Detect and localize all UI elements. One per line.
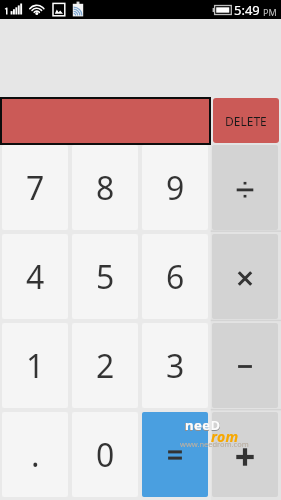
staticText: 8 bbox=[96, 166, 115, 210]
button[interactable]: 8 bbox=[72, 145, 138, 230]
staticText: 3 bbox=[166, 344, 185, 388]
button[interactable]: 4 bbox=[2, 234, 68, 319]
staticText: DELETE bbox=[225, 113, 267, 129]
staticText: 2 bbox=[96, 344, 115, 388]
staticText: 1 bbox=[26, 344, 45, 388]
staticText: 0 bbox=[96, 433, 115, 477]
button[interactable]: 5 bbox=[72, 234, 138, 319]
button[interactable]: add bbox=[212, 412, 278, 497]
staticText: www.needrom.com bbox=[180, 439, 249, 449]
staticText: neeD bbox=[184, 416, 221, 435]
button[interactable]: multiply bbox=[212, 234, 278, 319]
button[interactable]: 6 bbox=[142, 234, 208, 319]
button[interactable]: DELETE bbox=[213, 98, 279, 143]
staticText: neeD bbox=[185, 416, 221, 434]
button[interactable]: divide bbox=[212, 145, 278, 230]
button[interactable]: 0 bbox=[72, 412, 138, 497]
staticText: 5:49 bbox=[234, 1, 260, 19]
button[interactable]: equals bbox=[142, 412, 208, 497]
staticText: 9 bbox=[166, 166, 185, 210]
staticText: . bbox=[31, 433, 40, 477]
button[interactable]: 7 bbox=[2, 145, 68, 230]
staticText: 5 bbox=[96, 255, 115, 299]
button[interactable]: 1 bbox=[2, 323, 68, 408]
button[interactable]: 9 bbox=[142, 145, 208, 230]
button[interactable]: subtract bbox=[212, 323, 278, 408]
button[interactable]: . bbox=[2, 412, 68, 497]
staticText: PM bbox=[263, 6, 277, 18]
staticText: 4 bbox=[26, 255, 45, 299]
staticText: 6 bbox=[166, 255, 185, 299]
button[interactable]: 3 bbox=[142, 323, 208, 408]
button[interactable]: 2 bbox=[72, 323, 138, 408]
staticText: rom bbox=[211, 427, 239, 446]
staticText: 7 bbox=[26, 166, 45, 210]
